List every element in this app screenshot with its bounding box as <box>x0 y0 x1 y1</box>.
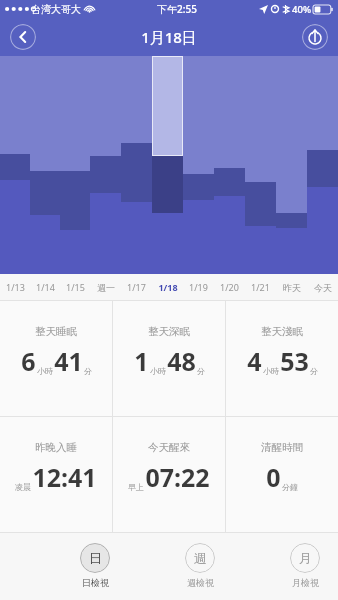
button[interactable]: 1/19 <box>183 274 214 300</box>
button[interactable]: 週一 <box>90 274 121 300</box>
button[interactable]: 今天 <box>307 274 338 300</box>
staticText: 1/17 <box>127 281 146 293</box>
staticText: 早上 <box>128 482 144 492</box>
staticText: 1/20 <box>220 281 239 293</box>
button[interactable]: 週 <box>185 543 215 588</box>
staticText: 分 <box>197 366 205 376</box>
staticText: 下午2:55 <box>157 2 197 16</box>
staticText: 週一 <box>97 282 115 293</box>
staticText: 凌晨 <box>15 482 31 492</box>
staticText: 小時 <box>150 366 166 376</box>
staticText: 1/21 <box>251 281 270 293</box>
button[interactable]: Share <box>302 24 328 50</box>
staticText: 日檢視 <box>82 577 109 588</box>
staticText: 1 <box>134 344 149 378</box>
staticText: 1/14 <box>36 281 55 293</box>
staticText: 整天睡眠 <box>35 325 77 338</box>
staticText: 整天淺眠 <box>261 325 303 338</box>
button[interactable]: 1/13 <box>0 274 30 300</box>
staticText: 6 <box>21 344 36 378</box>
button[interactable]: 1/17 <box>121 274 152 300</box>
staticText: 1/19 <box>189 281 208 293</box>
staticText: 1月18日 <box>141 27 197 47</box>
staticText: 分 <box>310 366 318 376</box>
staticText: 今天醒來 <box>148 441 190 454</box>
button[interactable]: 日 <box>80 543 110 588</box>
button[interactable]: 整天淺眠 <box>226 301 338 416</box>
staticText: 53 <box>280 344 309 378</box>
staticText: 今天 <box>314 282 332 293</box>
button[interactable]: 昨天 <box>276 274 307 300</box>
staticText: 週檢視 <box>187 577 214 588</box>
staticText: 41 <box>54 344 83 378</box>
staticText: 4 <box>247 344 262 378</box>
button[interactable]: 整天深眠 <box>113 301 225 416</box>
staticText: 月 <box>299 550 312 566</box>
button[interactable]: 昨晚入睡 <box>0 417 112 532</box>
staticText: 分 <box>84 366 92 376</box>
button[interactable]: 整天睡眠 <box>0 301 112 416</box>
staticText: 1/18 <box>158 281 178 293</box>
staticText: 小時 <box>37 366 53 376</box>
staticText: 昨天 <box>283 282 301 293</box>
button[interactable]: 今天醒來 <box>113 417 225 532</box>
staticText: 1/15 <box>66 281 85 293</box>
staticText: 1/13 <box>6 281 25 293</box>
staticText: 昨晚入睡 <box>35 441 77 454</box>
staticText: 40% <box>292 3 311 16</box>
staticText: 日 <box>89 550 102 566</box>
button[interactable]: 1/15 <box>60 274 90 300</box>
staticText: 12:41 <box>32 460 97 494</box>
button[interactable]: 清醒時間 <box>226 417 338 532</box>
button[interactable]: 月 <box>290 543 320 588</box>
button[interactable]: 1/14 <box>30 274 60 300</box>
staticText: 48 <box>167 344 196 378</box>
staticText: 小時 <box>263 366 279 376</box>
button[interactable]: 1/21 <box>245 274 276 300</box>
button[interactable]: Back <box>10 24 36 50</box>
staticText: 分鐘 <box>282 482 298 492</box>
staticText: 月檢視 <box>292 577 319 588</box>
button[interactable]: 1/18 <box>152 274 183 300</box>
staticText: 台湾大哥大 <box>31 3 81 16</box>
button[interactable]: 1/20 <box>214 274 245 300</box>
staticText: 週 <box>194 550 207 566</box>
staticText: 整天深眠 <box>148 325 190 338</box>
staticText: 清醒時間 <box>261 441 303 454</box>
staticText: 0 <box>266 460 281 494</box>
staticText: 07:22 <box>145 460 210 494</box>
